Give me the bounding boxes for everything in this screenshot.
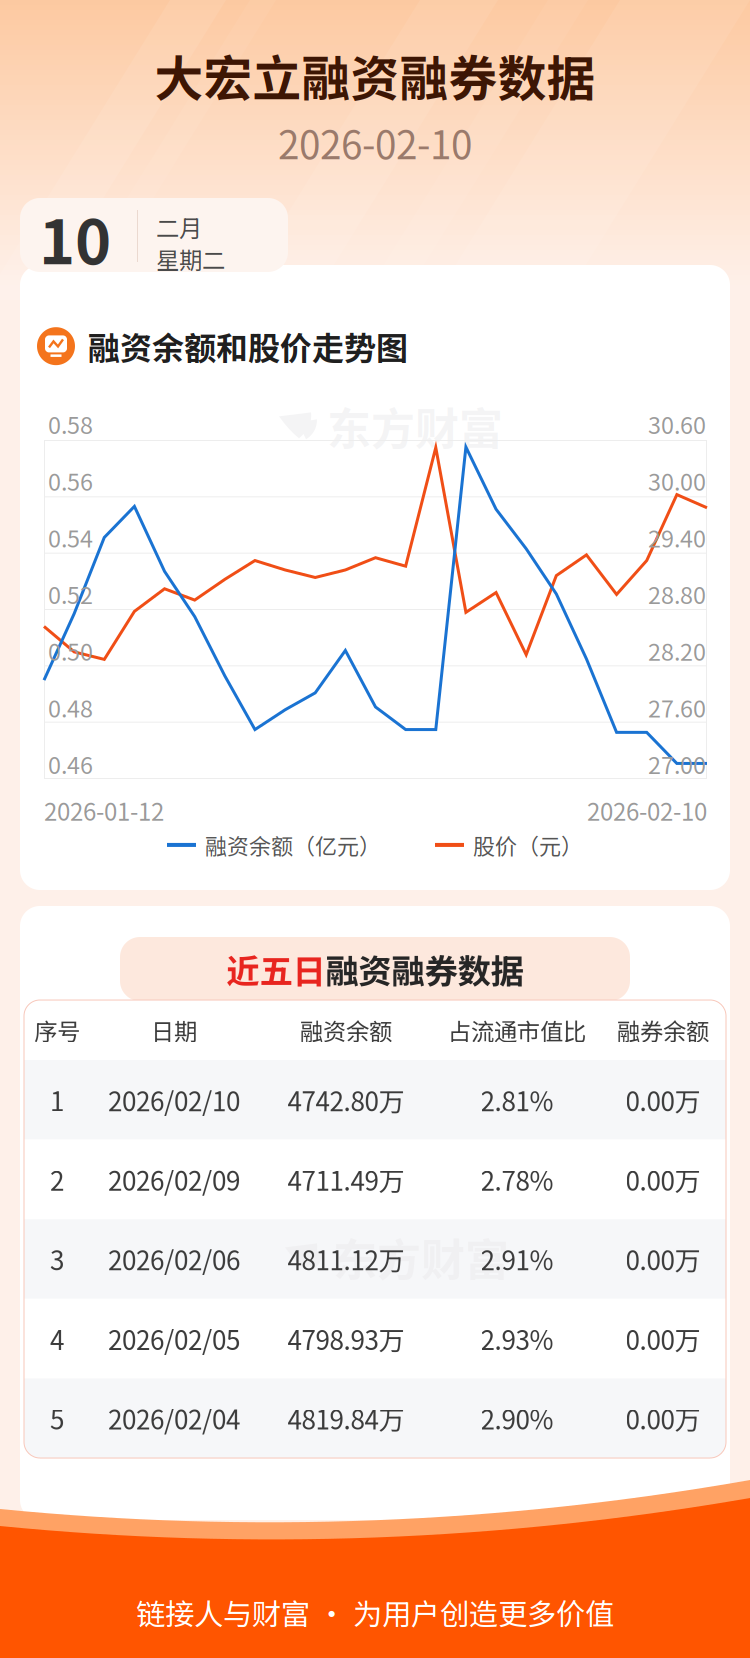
staticText: 2026-02-10	[278, 114, 472, 170]
staticText: 融资余额	[300, 1013, 392, 1047]
staticText: 股价（元）	[473, 829, 583, 861]
staticText: 0.56	[48, 464, 93, 497]
staticText: 4742.80万	[287, 1081, 404, 1119]
staticText: 0.54	[48, 520, 93, 554]
staticText: 10	[39, 193, 111, 282]
staticText: 29.40	[648, 520, 706, 554]
staticText: 2026/02/04	[108, 1399, 240, 1437]
staticText: 28.80	[648, 577, 706, 611]
staticText: 1	[50, 1081, 64, 1119]
staticText: 2026/02/10	[108, 1081, 240, 1119]
staticText: 2026-01-12	[44, 793, 164, 828]
staticText: 0.00万	[625, 1320, 700, 1357]
staticText: 0.00万	[625, 1081, 700, 1119]
staticText: 融资余额（亿元）	[205, 829, 381, 861]
staticText: 大宏立融资融券数据	[154, 40, 595, 110]
staticText: 2026/02/09	[108, 1161, 240, 1198]
staticText: 4811.12万	[287, 1240, 404, 1278]
staticText: 0.00万	[625, 1161, 700, 1198]
staticText: 0.00万	[625, 1240, 700, 1278]
staticText: 融资融券数据	[325, 945, 523, 993]
staticText: 27.60	[648, 690, 706, 724]
staticText: 0.52	[48, 577, 93, 611]
staticText: 日期	[151, 1013, 197, 1047]
staticText: 0.46	[48, 747, 93, 781]
staticText: 链接人与财富 · 为用户创造更多价值	[136, 1591, 614, 1633]
staticText: 30.60	[648, 407, 706, 441]
staticText: 0.00万	[625, 1399, 700, 1437]
staticText: 近五日	[226, 945, 325, 993]
staticText: 二月	[156, 210, 202, 244]
staticText: 0.58	[48, 407, 93, 441]
staticText: 0.48	[48, 690, 93, 724]
staticText: 2.81%	[480, 1081, 553, 1119]
staticText: 序号	[34, 1013, 80, 1047]
staticText: 星期二	[156, 242, 225, 276]
staticText: 融券余额	[617, 1013, 709, 1047]
staticText: 30.00	[648, 464, 706, 497]
staticText: 2026/02/05	[108, 1320, 240, 1357]
staticText: 2026/02/06	[108, 1240, 240, 1278]
staticText: 3	[50, 1240, 64, 1278]
staticText: 4	[50, 1320, 64, 1357]
staticText: 东方财富	[333, 1225, 509, 1289]
staticText: 2.91%	[480, 1240, 553, 1278]
staticText: 东方财富	[327, 394, 503, 458]
staticText: 28.20	[648, 634, 706, 667]
staticText: 2.78%	[480, 1161, 553, 1198]
staticText: 4798.93万	[287, 1320, 404, 1357]
staticText: 2.90%	[480, 1399, 553, 1437]
staticText: 2	[50, 1161, 64, 1198]
staticText: 占流通市值比	[448, 1013, 586, 1047]
staticText: 融资余额和股价走势图	[88, 323, 408, 369]
staticText: 5	[50, 1399, 64, 1437]
staticText: 4711.49万	[287, 1161, 404, 1198]
staticText: 0.50	[48, 634, 93, 667]
staticText: 2026-02-10	[587, 793, 707, 828]
staticText: 27.00	[648, 747, 706, 781]
staticText: 2.93%	[480, 1320, 553, 1357]
staticText: 4819.84万	[287, 1399, 404, 1437]
